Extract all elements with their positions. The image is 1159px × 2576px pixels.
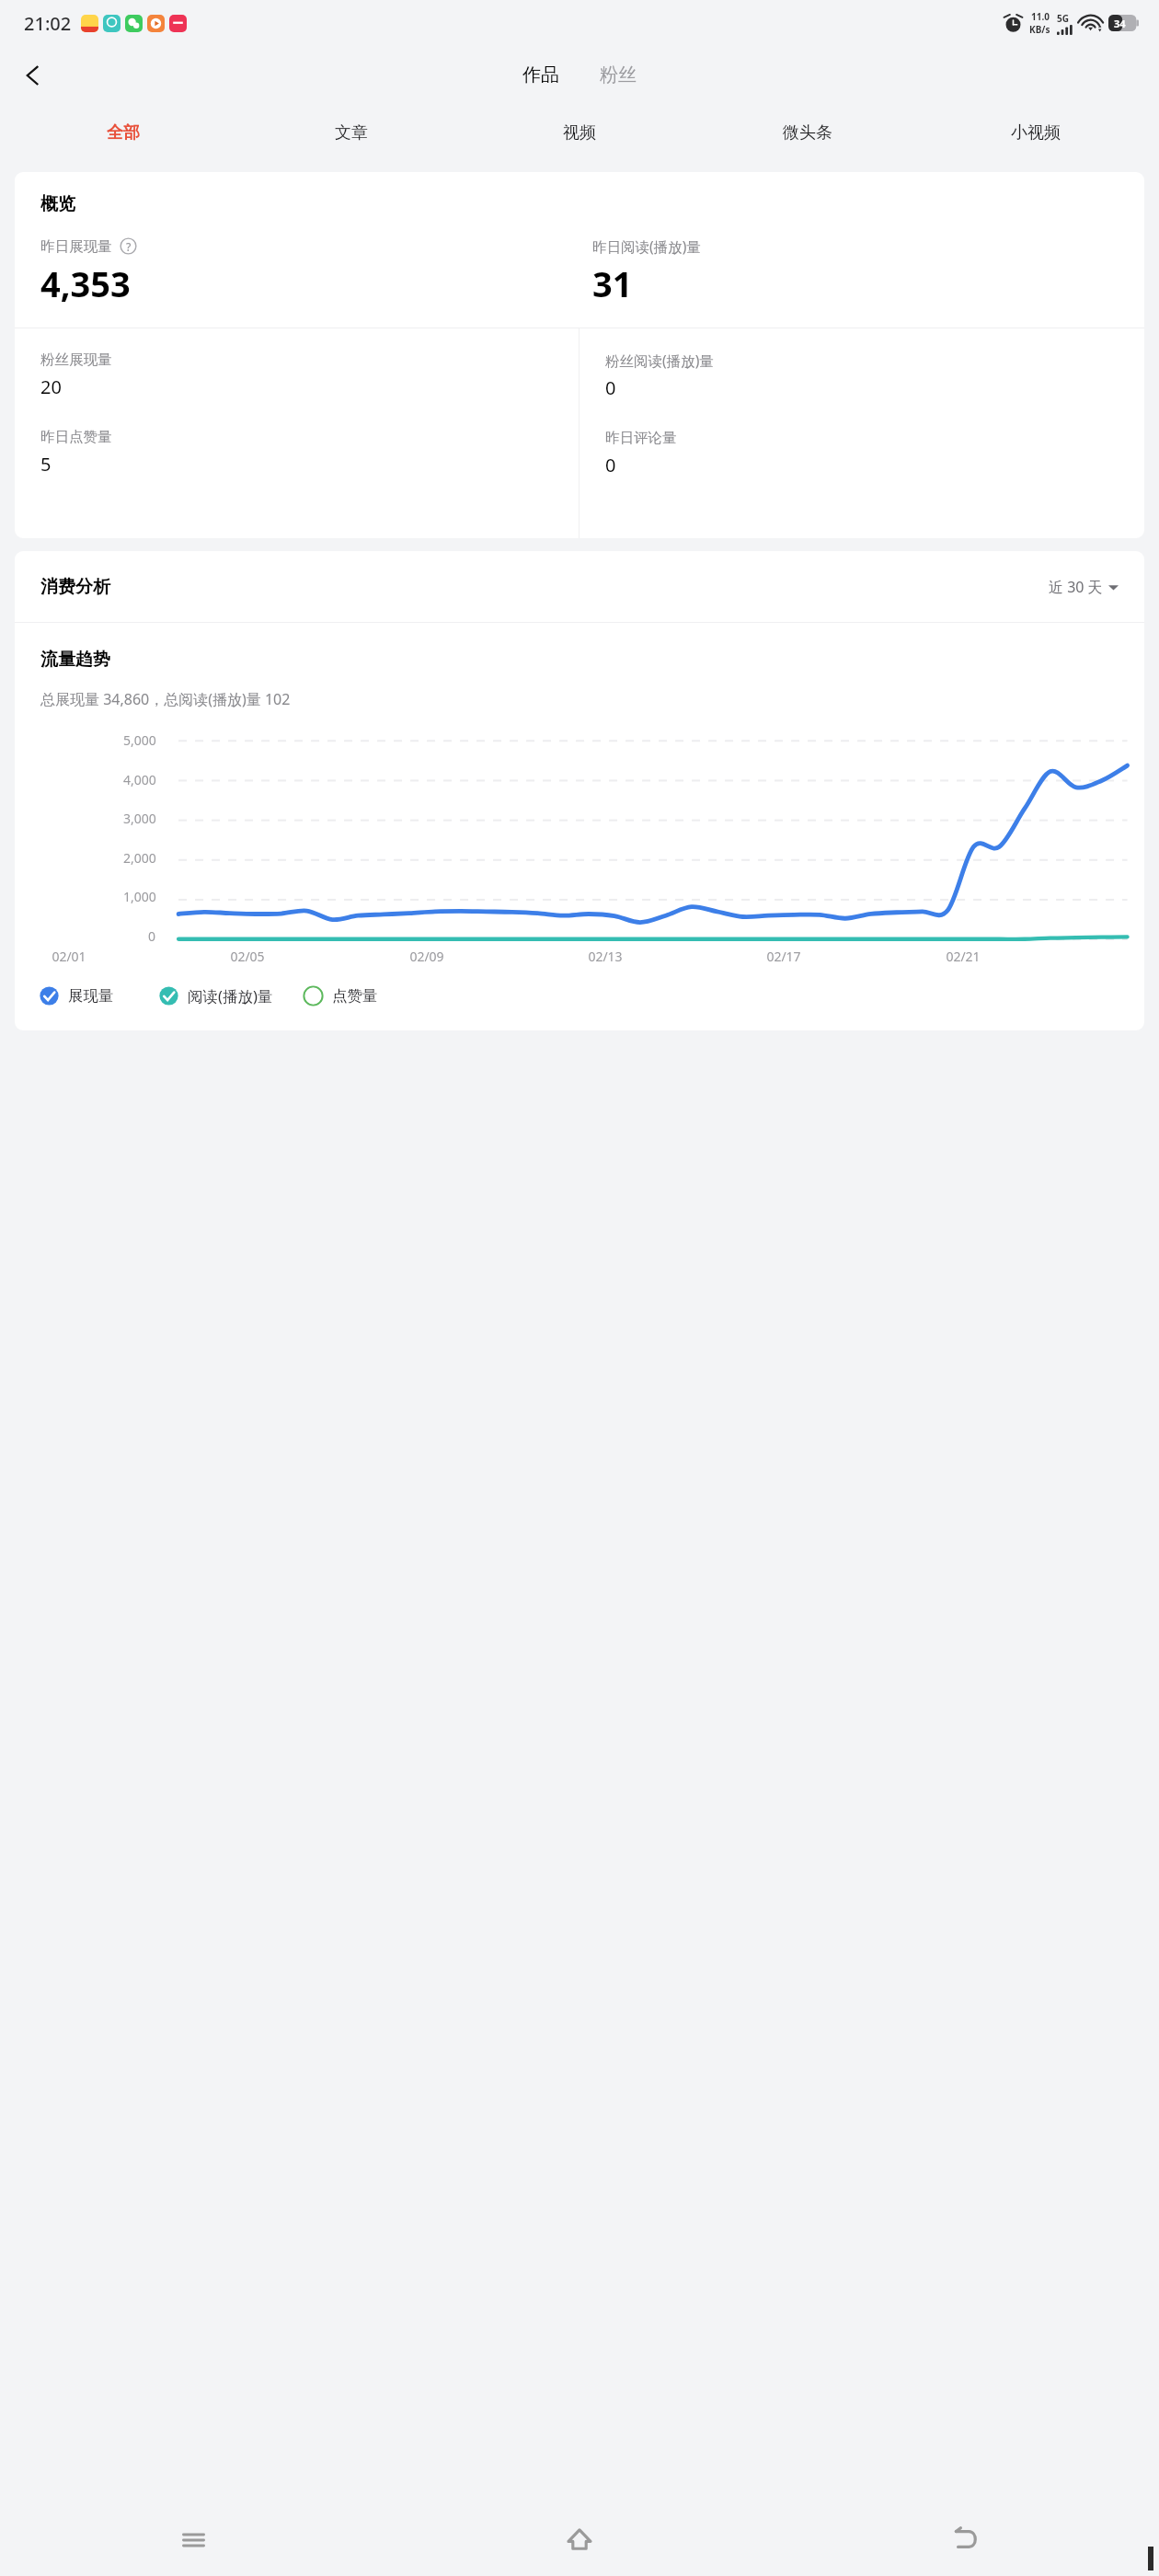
staticText: 总展现量 34,860，总阅读(播放)量 102 <box>40 689 291 709</box>
button[interactable]: 全部 <box>9 110 237 155</box>
staticText: 0 <box>605 453 616 477</box>
button[interactable]: 展现量 <box>39 982 114 1010</box>
staticText: 2,000 <box>123 849 156 867</box>
staticText: 11.0 <box>1031 10 1050 23</box>
staticText: 微头条 <box>783 122 832 144</box>
staticText: 昨日展现量 <box>40 237 112 256</box>
staticText: 02/21 <box>946 948 981 965</box>
button[interactable]: 文章 <box>237 110 465 155</box>
button[interactable]: 粉丝 <box>591 60 646 90</box>
staticText: 5G <box>1057 12 1069 25</box>
staticText: 02/17 <box>766 948 801 965</box>
staticText: 3,000 <box>123 810 156 827</box>
button[interactable]: Back <box>773 2502 1159 2576</box>
staticText: 4,000 <box>123 771 156 788</box>
staticText: 昨日阅读(播放)量 <box>592 236 701 256</box>
button[interactable]: 点赞量 <box>303 982 378 1010</box>
staticText: 阅读(播放)量 <box>188 985 273 1006</box>
button[interactable]: 小视频 <box>922 110 1150 155</box>
staticText: 02/13 <box>588 948 623 965</box>
staticText: 02/09 <box>409 948 444 965</box>
staticText: 粉丝展现量 <box>40 351 112 369</box>
staticText: 34 <box>1114 17 1126 30</box>
staticText: 1,000 <box>123 888 156 905</box>
staticText: 昨日点赞量 <box>40 428 112 446</box>
staticText: 粉丝 <box>600 63 637 86</box>
staticText: 全部 <box>107 122 140 144</box>
button[interactable]: 视频 <box>465 110 694 155</box>
staticText: KB/s <box>1029 23 1050 36</box>
button[interactable]: 微头条 <box>694 110 922 155</box>
staticText: 5,000 <box>123 731 156 749</box>
staticText: 5 <box>40 452 52 477</box>
staticText: 点赞量 <box>332 986 378 1006</box>
staticText: 20 <box>40 374 62 399</box>
staticText: 近 30 天 <box>1049 577 1103 597</box>
staticText: ? <box>126 239 132 254</box>
staticText: 消费分析 <box>40 576 110 598</box>
button[interactable]: 作品 <box>513 60 568 90</box>
staticText: 02/05 <box>230 948 265 965</box>
button[interactable]: 帮助 <box>119 236 138 256</box>
staticText: 31 <box>592 259 633 307</box>
staticText: 昨日评论量 <box>605 429 677 447</box>
button[interactable]: 近 30 天 <box>1043 571 1124 603</box>
staticText: 流量趋势 <box>40 649 110 671</box>
staticText: 02/01 <box>52 948 86 965</box>
button[interactable]: Back <box>11 53 55 98</box>
staticText: 0 <box>605 375 616 400</box>
staticText: 小视频 <box>1011 122 1061 144</box>
staticText: 0 <box>148 927 156 945</box>
staticText: 作品 <box>522 63 559 86</box>
button[interactable]: 阅读(播放)量 <box>158 982 273 1010</box>
staticText: 展现量 <box>68 986 114 1006</box>
button[interactable]: Recents <box>0 2502 386 2576</box>
staticText: 概览 <box>40 193 75 215</box>
staticText: 文章 <box>335 122 368 144</box>
staticText: 4,353 <box>40 259 131 307</box>
staticText: 视频 <box>563 122 596 144</box>
staticText: 粉丝阅读(播放)量 <box>605 351 714 370</box>
staticText: 21:02 <box>24 11 72 36</box>
button[interactable]: Home <box>386 2502 773 2576</box>
